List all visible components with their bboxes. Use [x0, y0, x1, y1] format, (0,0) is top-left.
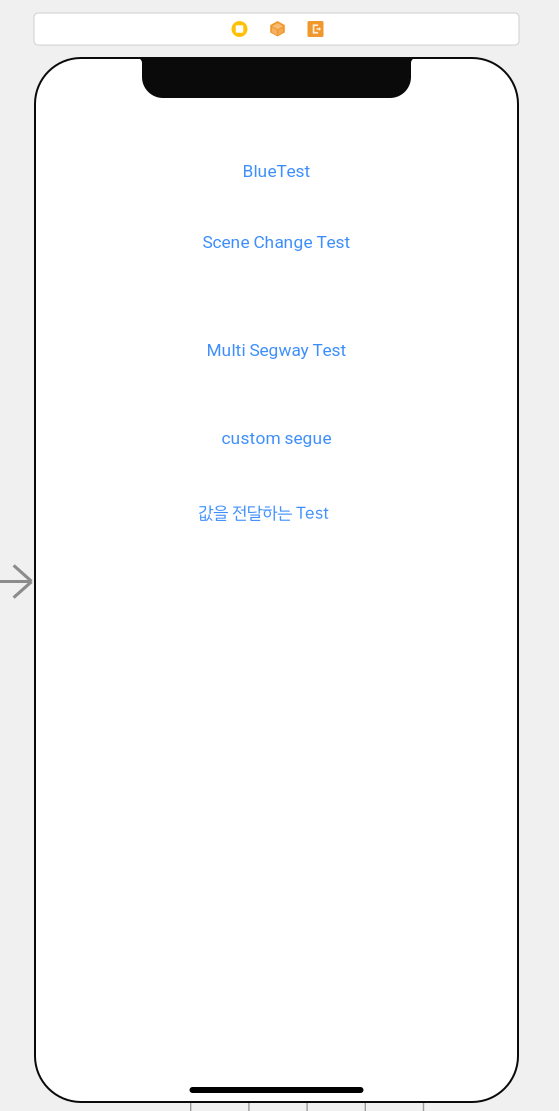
button[interactable]: Multi Segway Test [166, 335, 386, 365]
button[interactable]: 값을 전달하는 Test [163, 498, 363, 528]
staticText: 값을 전달하는 Test [198, 500, 329, 526]
button[interactable]: Exit [296, 14, 334, 44]
button[interactable]: Scene Change Test [166, 227, 386, 257]
staticText: BlueTest [242, 161, 310, 181]
staticText: Scene Change Test [202, 232, 350, 252]
button[interactable]: BlueTest [196, 156, 356, 186]
staticText: custom segue [221, 428, 331, 448]
staticText: Multi Segway Test [206, 340, 346, 360]
button[interactable]: custom segue [186, 423, 366, 453]
button[interactable]: View Controller [220, 14, 258, 44]
button[interactable]: First Responder [258, 14, 296, 44]
